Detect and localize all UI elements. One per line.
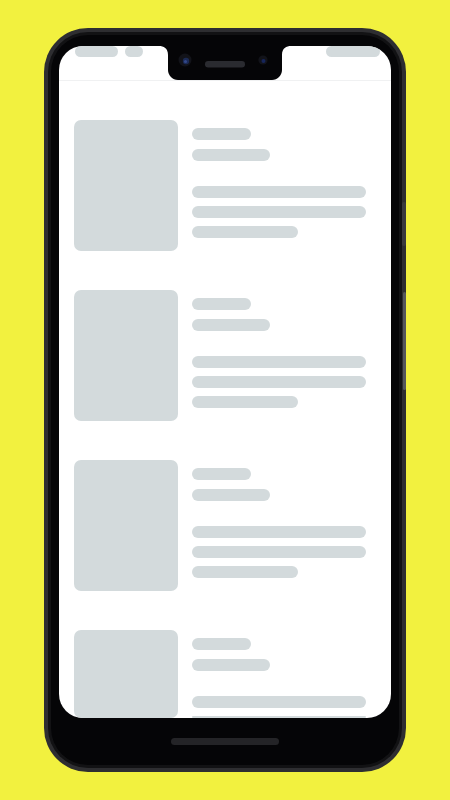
button[interactable] bbox=[59, 450, 391, 620]
button[interactable] bbox=[59, 620, 391, 718]
button[interactable] bbox=[59, 280, 391, 450]
button[interactable] bbox=[59, 110, 391, 280]
